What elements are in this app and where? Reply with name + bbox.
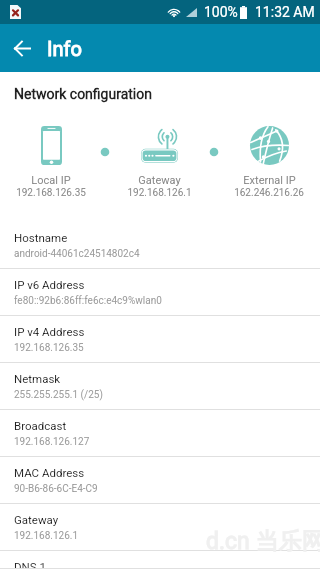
- button[interactable]: Hostname: [0, 222, 320, 269]
- staticText: IP v6 Address: [14, 278, 85, 291]
- button[interactable]: Netmask: [0, 363, 320, 410]
- staticText: Gateway: [138, 174, 181, 187]
- staticText: IP v4 Address: [14, 325, 85, 338]
- button[interactable]: MAC Address: [0, 457, 320, 504]
- staticText: 100%: [204, 4, 238, 20]
- staticText: External IP: [243, 174, 296, 187]
- staticText: MAC Address: [14, 466, 85, 479]
- button[interactable]: IP v6 Address: [0, 269, 320, 316]
- staticText: 90-B6-86-6C-E4-C9: [14, 483, 98, 495]
- staticText: d.cn 当乐网: [206, 527, 320, 556]
- staticText: Netmask: [14, 372, 61, 385]
- button[interactable]: Local IP: [16, 126, 86, 199]
- staticText: Info: [47, 37, 82, 60]
- button[interactable]: External IP: [234, 126, 304, 199]
- button[interactable]: IP v4 Address: [0, 316, 320, 363]
- staticText: 192.168.126.1: [14, 530, 79, 542]
- button[interactable]: Gateway: [127, 126, 192, 199]
- button[interactable]: DNS 1: [0, 551, 320, 569]
- staticText: 192.168.126.35: [16, 187, 86, 199]
- staticText: 192.168.126.127: [14, 436, 90, 448]
- staticText: Network configuration: [14, 86, 152, 102]
- staticText: 192.168.126.35: [14, 342, 84, 354]
- button[interactable]: Navigate up: [0, 24, 44, 72]
- staticText: Local IP: [31, 174, 71, 187]
- staticText: fe80::92b6:86ff:fe6c:e4c9%wlan0: [14, 295, 162, 307]
- staticText: android-44061c24514802c4: [14, 248, 140, 260]
- staticText: 192.168.126.1: [127, 187, 192, 199]
- staticText: 11:32 AM: [255, 4, 315, 20]
- button[interactable]: Broadcast: [0, 410, 320, 457]
- staticText: 255.255.255.1 (/25): [14, 389, 103, 401]
- staticText: Broadcast: [14, 419, 67, 432]
- button[interactable]: Gateway: [0, 504, 320, 551]
- staticText: Hostname: [14, 231, 68, 244]
- staticText: Gateway: [14, 513, 59, 526]
- staticText: DNS 1: [14, 560, 46, 569]
- staticText: 162.246.216.26: [234, 187, 304, 199]
